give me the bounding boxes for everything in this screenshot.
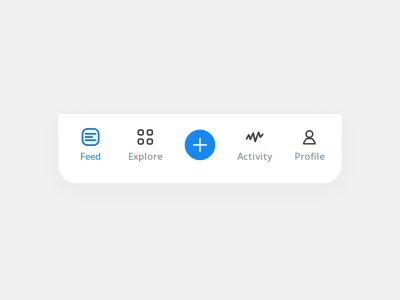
button[interactable]: Feed xyxy=(63,114,118,183)
button[interactable]: Profile xyxy=(282,114,337,183)
button[interactable]: Activity xyxy=(227,114,282,183)
staticText: Explore xyxy=(128,150,162,162)
staticText: Feed xyxy=(80,150,101,162)
staticText: Profile xyxy=(294,150,324,162)
button[interactable]: Explore xyxy=(118,114,173,183)
staticText: Activity xyxy=(237,150,272,162)
button[interactable]: Create xyxy=(173,114,227,183)
